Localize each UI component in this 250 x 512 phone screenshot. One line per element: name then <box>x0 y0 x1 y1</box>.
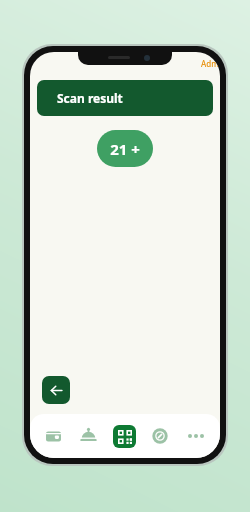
button[interactable]: 21 + <box>97 130 153 167</box>
button[interactable]: Back <box>42 376 70 404</box>
button[interactable]: More <box>178 414 214 458</box>
staticText: Scan result <box>57 90 123 106</box>
button[interactable]: Services <box>71 414 106 458</box>
button[interactable]: Wallet <box>36 414 71 458</box>
button[interactable]: Explore <box>142 414 178 458</box>
button[interactable]: Scan <box>106 414 142 458</box>
staticText: 21 + <box>110 139 140 159</box>
staticText: Admin <box>201 58 220 69</box>
button[interactable]: Scan result <box>37 80 213 116</box>
